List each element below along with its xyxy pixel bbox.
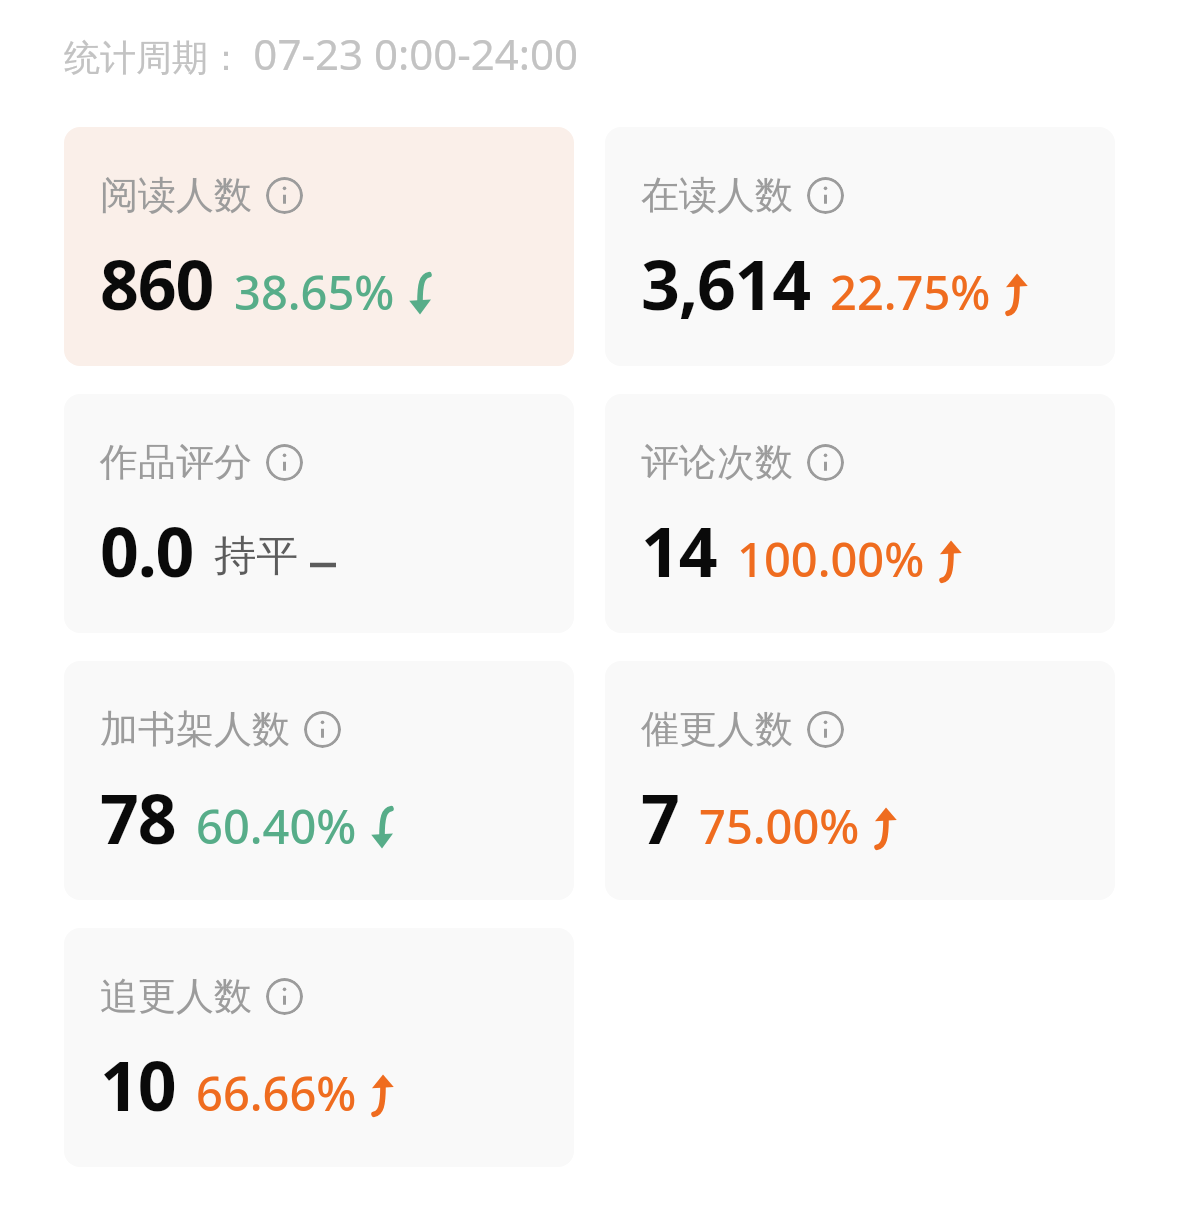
staticText: 作品评分 bbox=[100, 438, 252, 486]
staticText: 10 bbox=[100, 1038, 176, 1131]
staticText: 60.40% bbox=[196, 794, 357, 858]
staticText: 75.00% bbox=[699, 794, 860, 858]
button[interactable]: 关于评论次数的说明 bbox=[807, 444, 844, 481]
button[interactable]: 关于作品评分的说明 bbox=[266, 444, 303, 481]
button[interactable]: 关于追更人数的说明 bbox=[266, 978, 303, 1015]
button[interactable]: 关于催更人数的说明 bbox=[807, 711, 844, 748]
staticText: 0.0 bbox=[100, 504, 194, 597]
staticText: 100.00% bbox=[737, 527, 925, 591]
staticText: 3,614 bbox=[641, 237, 810, 330]
staticText: 7 bbox=[641, 771, 679, 864]
staticText: 22.75% bbox=[830, 260, 991, 324]
button[interactable]: 评论次数 bbox=[605, 394, 1115, 633]
staticText: 持平 bbox=[214, 530, 298, 583]
button[interactable]: 在读人数 bbox=[605, 127, 1115, 366]
button[interactable]: 关于在读人数的说明 bbox=[807, 177, 844, 214]
staticText: 催更人数 bbox=[641, 705, 793, 753]
staticText: 追更人数 bbox=[100, 972, 252, 1020]
button[interactable]: 作品评分 bbox=[64, 394, 574, 633]
staticText: 14 bbox=[641, 504, 717, 597]
staticText: 38.65% bbox=[234, 260, 395, 324]
staticText: 860 bbox=[100, 237, 214, 330]
staticText: 评论次数 bbox=[641, 438, 793, 486]
staticText: 统计周期： 07-23 0:00-24:00 bbox=[64, 25, 579, 82]
button[interactable]: 阅读人数 bbox=[64, 127, 574, 366]
staticText: 加书架人数 bbox=[100, 705, 290, 753]
button[interactable]: 催更人数 bbox=[605, 661, 1115, 900]
staticText: 78 bbox=[100, 771, 176, 864]
button[interactable]: 关于阅读人数的说明 bbox=[266, 177, 303, 214]
button[interactable]: 追更人数 bbox=[64, 928, 574, 1167]
staticText: 66.66% bbox=[196, 1061, 357, 1125]
staticText: 在读人数 bbox=[641, 171, 793, 219]
button[interactable]: 加书架人数 bbox=[64, 661, 574, 900]
staticText: 阅读人数 bbox=[100, 171, 252, 219]
button[interactable]: 关于加书架人数的说明 bbox=[304, 711, 341, 748]
